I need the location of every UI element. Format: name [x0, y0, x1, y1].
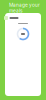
staticText: Manage your meals — [9, 2, 40, 14]
staticText: easily — [9, 14, 23, 20]
